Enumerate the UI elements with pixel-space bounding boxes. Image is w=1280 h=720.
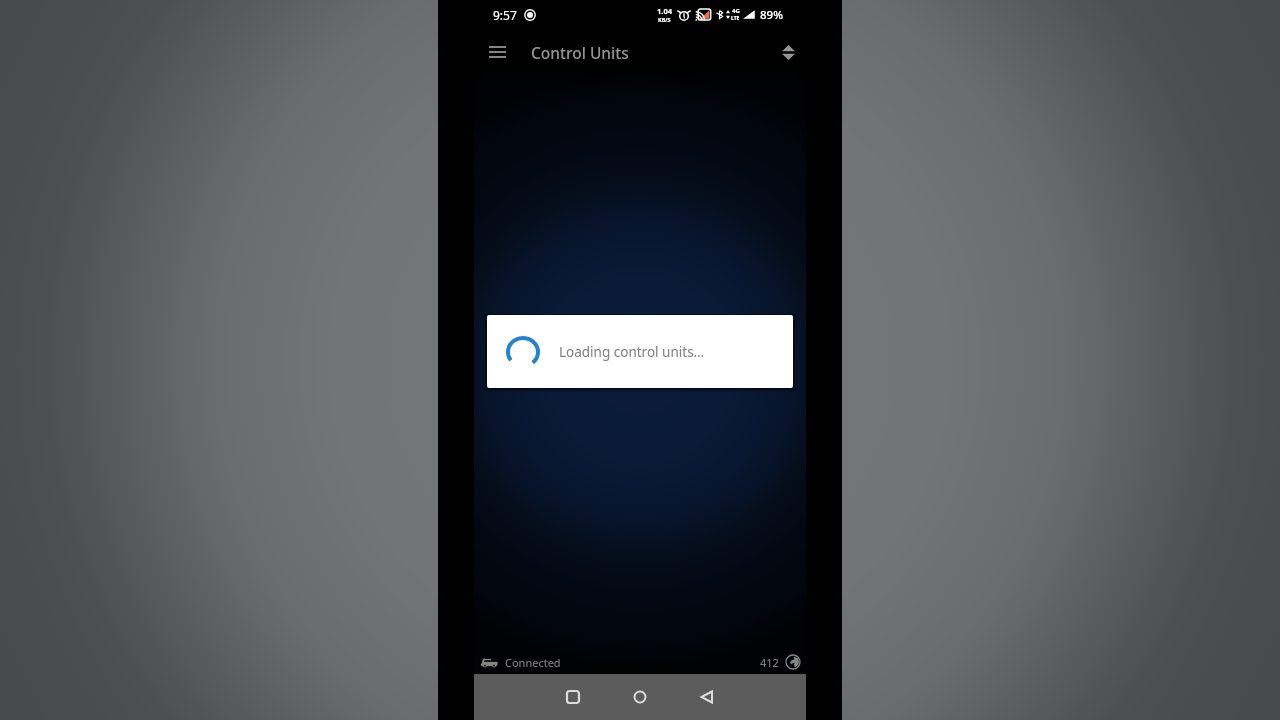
staticText: Loading control units… — [559, 343, 705, 361]
staticText: Control Units — [531, 42, 629, 63]
staticText: KB/S — [658, 16, 671, 23]
button[interactable]: Sort control units — [771, 35, 805, 69]
button[interactable]: Back — [685, 675, 729, 719]
button[interactable]: Open navigation menu — [480, 35, 514, 69]
staticText: 1.04 — [657, 6, 672, 16]
staticText: 9:57 — [493, 7, 517, 23]
staticText: 4G — [732, 7, 740, 15]
staticText: 412 — [760, 655, 779, 670]
staticText: LTE — [731, 15, 740, 22]
staticText: 89% — [760, 7, 783, 23]
staticText: Connected — [505, 655, 561, 670]
button[interactable]: Loading control units… — [487, 315, 793, 388]
button[interactable]: Recent apps — [551, 675, 595, 719]
button[interactable]: Home — [618, 675, 662, 719]
